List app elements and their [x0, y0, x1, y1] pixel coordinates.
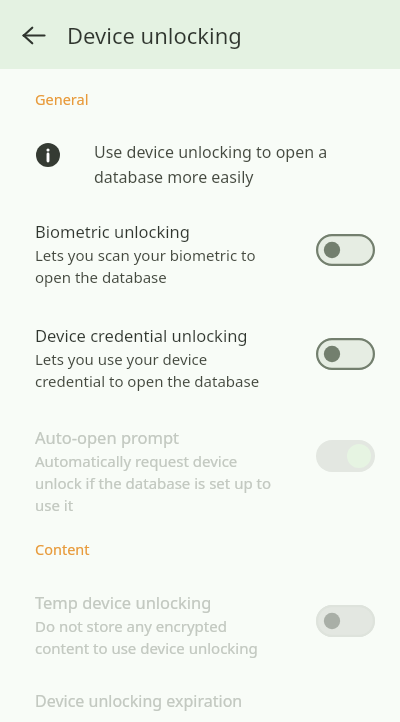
staticText: Do not store any encrypted content to us… — [35, 616, 258, 659]
staticText: Device unlocking — [67, 20, 242, 50]
staticText: Biometric unlocking — [35, 220, 190, 242]
button[interactable]: Auto-open prompt — [316, 440, 375, 472]
button[interactable]: Device credential unlocking — [0, 324, 400, 392]
button[interactable]: Auto-open prompt — [0, 426, 400, 516]
button[interactable]: Device unlocking expiration — [35, 690, 243, 712]
staticText: Automatically request device unlock if t… — [35, 451, 272, 516]
button[interactable]: Back — [11, 13, 55, 57]
staticText: Use device unlocking to open a database … — [94, 141, 328, 187]
staticText: General — [35, 89, 89, 109]
staticText: Lets you scan your biometric to open the… — [35, 245, 256, 288]
staticText: Auto-open prompt — [35, 426, 180, 448]
button[interactable]: Temp device unlocking — [316, 605, 375, 637]
button[interactable]: Device credential unlocking — [316, 338, 375, 370]
staticText: Lets you use your device credential to o… — [35, 349, 260, 392]
button[interactable]: Temp device unlocking — [0, 591, 400, 659]
staticText: Content — [35, 539, 90, 559]
staticText: Temp device unlocking — [35, 591, 212, 613]
button[interactable]: Biometric unlocking — [316, 234, 375, 266]
staticText: Device credential unlocking — [35, 324, 248, 346]
button[interactable]: Biometric unlocking — [0, 220, 400, 288]
